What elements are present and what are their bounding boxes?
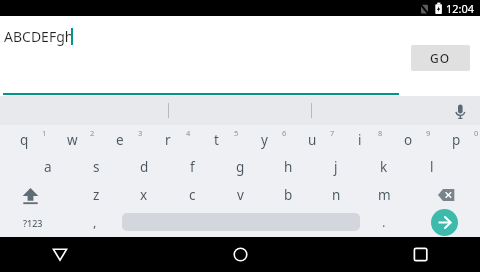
staticText: s <box>93 158 100 176</box>
button[interactable] <box>36 239 84 270</box>
button[interactable] <box>396 239 444 270</box>
staticText: t <box>214 131 219 149</box>
staticText: GO <box>430 50 451 66</box>
staticText: 0 <box>474 128 479 138</box>
button[interactable]: k <box>360 153 408 181</box>
staticText: , <box>93 213 97 231</box>
button[interactable]: e <box>96 126 144 154</box>
button[interactable]: b <box>264 181 312 209</box>
staticText: ?123 <box>23 217 43 229</box>
staticText: l <box>430 158 434 176</box>
button[interactable]: i <box>336 126 384 154</box>
staticText: 12:04 <box>446 1 475 16</box>
button[interactable]: GO <box>411 45 470 71</box>
button[interactable]: q <box>0 126 48 154</box>
button[interactable]: p <box>432 126 480 154</box>
staticText: u <box>308 131 317 149</box>
button[interactable]: ?123 <box>5 209 61 237</box>
button[interactable]: o <box>384 126 432 154</box>
button[interactable]: w <box>48 126 96 154</box>
button[interactable] <box>446 96 476 125</box>
button[interactable]: , <box>80 208 110 236</box>
button[interactable]: u <box>288 126 336 154</box>
staticText: c <box>189 186 196 204</box>
staticText: h <box>284 158 293 176</box>
staticText: w <box>67 131 78 149</box>
button[interactable]: a <box>24 153 72 181</box>
staticText: ABCDEFgh <box>4 27 74 46</box>
staticText: i <box>358 131 362 149</box>
staticText: b <box>284 186 293 204</box>
staticText: . <box>382 213 386 231</box>
staticText: 4 <box>186 128 191 138</box>
staticText: p <box>452 131 461 149</box>
button[interactable]: z <box>72 181 120 209</box>
staticText: x <box>140 186 148 204</box>
staticText: q <box>20 131 29 149</box>
staticText: 9 <box>426 128 431 138</box>
button[interactable]: x <box>120 181 168 209</box>
button[interactable]: c <box>168 181 216 209</box>
staticText: 1 <box>42 128 47 138</box>
staticText: 7 <box>330 128 335 138</box>
button[interactable]: v <box>216 181 264 209</box>
staticText: m <box>378 186 391 204</box>
staticText: r <box>165 131 171 149</box>
staticText: j <box>334 158 338 176</box>
button[interactable] <box>420 181 480 209</box>
staticText: z <box>93 186 100 204</box>
button[interactable] <box>431 209 458 236</box>
button[interactable]: m <box>360 181 408 209</box>
button[interactable] <box>0 181 60 209</box>
button[interactable] <box>216 239 264 270</box>
button[interactable]: n <box>312 181 360 209</box>
button[interactable]: d <box>120 153 168 181</box>
button[interactable]: j <box>312 153 360 181</box>
staticText: y <box>261 131 268 149</box>
staticText: 8 <box>378 128 383 138</box>
staticText: k <box>380 158 388 176</box>
staticText: 5 <box>234 128 239 138</box>
staticText: f <box>190 158 195 176</box>
staticText: 2 <box>90 128 95 138</box>
button[interactable]: f <box>168 153 216 181</box>
button[interactable]: r <box>144 126 192 154</box>
staticText: o <box>404 131 413 149</box>
button[interactable]: g <box>216 153 264 181</box>
staticText: n <box>332 186 341 204</box>
staticText: 6 <box>282 128 287 138</box>
button[interactable]: t <box>192 126 240 154</box>
staticText: d <box>140 158 149 176</box>
button[interactable]: . <box>369 208 399 236</box>
staticText: a <box>44 158 52 176</box>
button[interactable]: y <box>240 126 288 154</box>
staticText: 3 <box>138 128 143 138</box>
button[interactable]: h <box>264 153 312 181</box>
staticText: g <box>236 158 245 176</box>
button[interactable]: l <box>408 153 456 181</box>
button[interactable]: s <box>72 153 120 181</box>
staticText: e <box>116 131 124 149</box>
staticText: v <box>237 186 244 204</box>
